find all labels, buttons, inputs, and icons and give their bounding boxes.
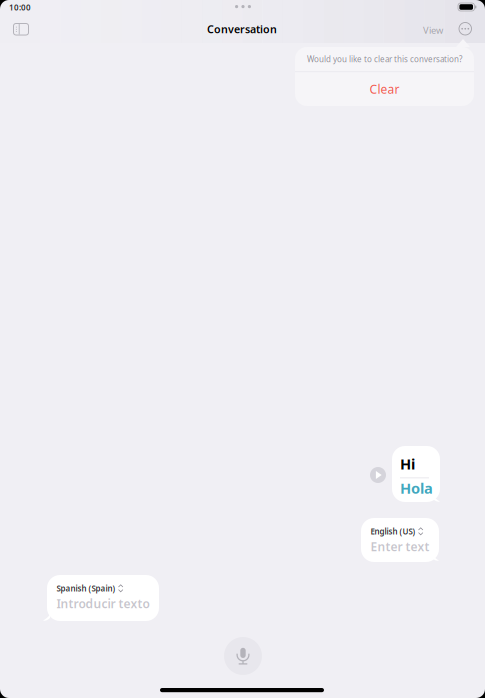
button[interactable]: Play translation <box>370 467 386 483</box>
button[interactable]: Clear <box>295 72 474 106</box>
button[interactable]: Record <box>224 637 262 675</box>
staticText: Spanish (Spain) <box>56 583 115 594</box>
staticText: 10:00 <box>9 2 31 13</box>
staticText: Hola <box>400 478 433 498</box>
staticText: Would you like to clear this conversatio… <box>307 54 462 64</box>
button[interactable]: English (US) <box>361 518 439 562</box>
button[interactable]: Spanish (Spain) <box>47 575 159 621</box>
button[interactable]: More options <box>454 17 476 40</box>
staticText: English (US) <box>370 526 415 537</box>
button[interactable]: Hi <box>392 446 440 502</box>
staticText: Introducir texto <box>56 596 149 611</box>
staticText: Hi <box>400 454 415 473</box>
button[interactable]: View <box>418 19 448 41</box>
staticText: View <box>423 24 443 36</box>
staticText: Enter text <box>370 539 429 554</box>
staticText: Clear <box>369 81 399 97</box>
staticText: Conversation <box>207 22 277 36</box>
button[interactable]: Show sidebar <box>7 17 34 41</box>
